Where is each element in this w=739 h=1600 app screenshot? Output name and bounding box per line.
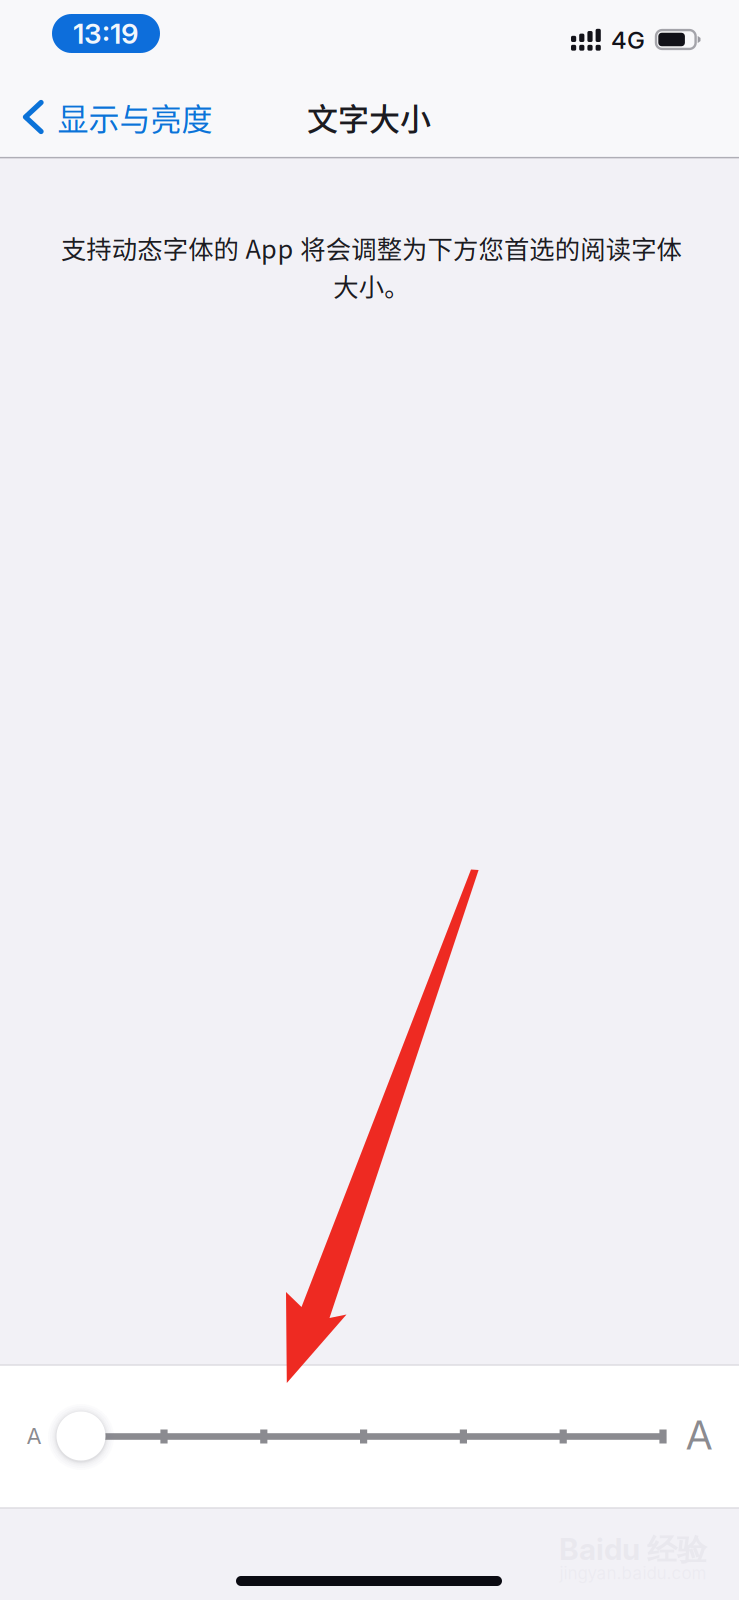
button[interactable]: Active call, 13:19	[52, 14, 160, 53]
staticText: 文字大小	[307, 95, 431, 139]
button[interactable]: 显示与亮度	[0, 79, 234, 155]
staticText: 13:19	[73, 17, 139, 50]
staticText: 支持动态字体的 App 将会调整为下方您首选的阅读字体大小。	[61, 229, 681, 304]
staticText: A	[686, 1411, 712, 1459]
staticText: Baidu 经验	[559, 1531, 707, 1569]
staticText: A	[26, 1423, 41, 1449]
staticText: 显示与亮度	[57, 95, 212, 139]
staticText: 4G	[611, 25, 645, 54]
button[interactable]: 文字大小	[0, 1365, 739, 1508]
